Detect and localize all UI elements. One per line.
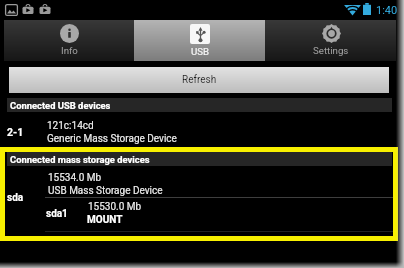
staticText: Generic Mass Storage Device — [47, 133, 177, 145]
staticText: USB Mass Storage Device — [48, 185, 163, 197]
staticText: USB — [191, 46, 210, 57]
staticText: Refresh — [182, 74, 217, 86]
other: Wi-Fi — [345, 3, 360, 16]
staticText: 15530.0 Mb — [88, 201, 142, 213]
staticText: 121c:14cd — [47, 120, 94, 132]
button[interactable]: Settings — [265, 20, 396, 61]
button[interactable]: USB — [134, 20, 265, 61]
staticText: sda1 — [46, 208, 68, 220]
staticText: 2-1 — [7, 126, 24, 138]
staticText: Connected mass storage devices — [10, 154, 150, 165]
staticText: sda — [7, 192, 24, 204]
staticText: 15534.0 Mb — [48, 172, 102, 184]
staticText: Settings — [313, 45, 349, 56]
button[interactable]: Refresh — [9, 67, 389, 93]
button[interactable]: Info — [4, 20, 134, 61]
staticText: Connected USB devices — [10, 100, 111, 111]
button[interactable]: 2-1 — [0, 112, 404, 147]
other: Battery — [363, 3, 371, 15]
staticText: MOUNT — [87, 214, 123, 226]
staticText: Info — [61, 45, 78, 56]
staticText: 1:40 — [376, 4, 398, 17]
